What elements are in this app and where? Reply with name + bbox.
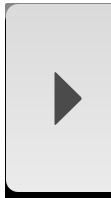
- button[interactable]: Play: [6, 4, 111, 192]
